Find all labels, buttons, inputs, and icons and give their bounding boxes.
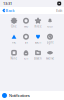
staticText: Three	[34, 25, 42, 28]
button[interactable]: Three	[32, 17, 44, 29]
button[interactable]: Edit	[56, 8, 62, 13]
staticText: 13:31	[3, 1, 12, 6]
button[interactable]: Four	[44, 17, 56, 29]
button[interactable]: One	[8, 17, 20, 29]
staticText: One	[11, 25, 17, 28]
button[interactable]: Nine	[8, 49, 20, 61]
staticText: Six	[24, 41, 27, 44]
button[interactable]: Twelve	[44, 49, 56, 61]
staticText: Back	[6, 8, 15, 13]
staticText: Four	[47, 25, 53, 28]
staticText: Notifications	[9, 93, 30, 98]
button[interactable]: Five	[8, 33, 20, 45]
staticText: Edit	[56, 8, 62, 13]
staticText: Ten	[23, 57, 28, 60]
button[interactable]: Seven	[32, 33, 44, 45]
staticText: Nine	[10, 57, 17, 60]
button[interactable]: Back	[2, 8, 15, 13]
button[interactable]: Two	[20, 17, 32, 29]
staticText: Five	[11, 41, 16, 44]
button[interactable]: Six	[20, 33, 32, 45]
staticText: Two	[23, 25, 28, 28]
button[interactable]: Ten	[20, 49, 32, 61]
button[interactable]: Eight	[44, 33, 56, 45]
button[interactable]: Eleven	[32, 49, 44, 61]
staticText: Eight	[46, 41, 53, 44]
staticText: Seven	[34, 41, 41, 44]
staticText: Eleven	[34, 57, 42, 60]
staticText: Twelve	[45, 57, 54, 60]
